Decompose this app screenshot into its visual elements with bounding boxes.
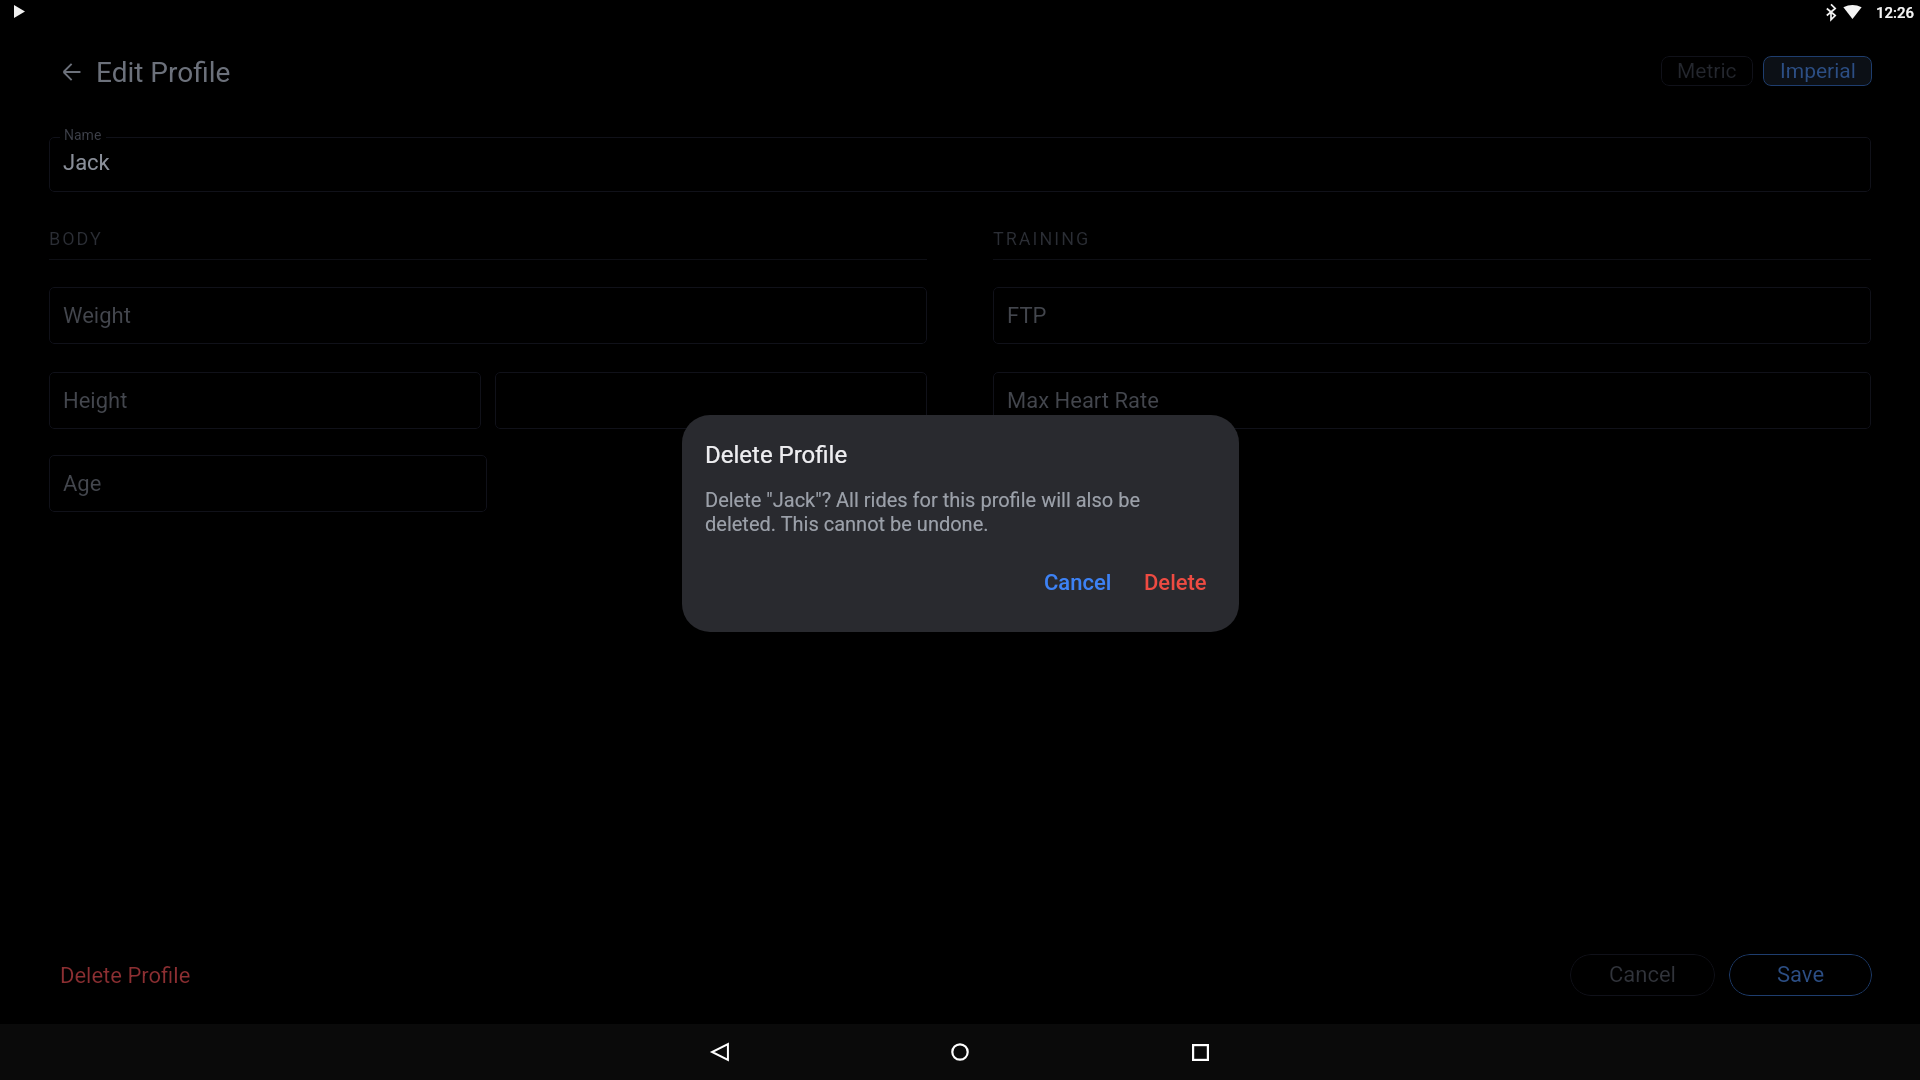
staticText: Height bbox=[63, 388, 128, 414]
staticText: Max Heart Rate bbox=[1007, 388, 1159, 414]
button[interactable]: Home bbox=[951, 1043, 969, 1061]
staticText: Imperial bbox=[1780, 59, 1856, 84]
staticText: Jack bbox=[63, 150, 110, 176]
button[interactable]: Age bbox=[49, 455, 487, 512]
staticText: FTP bbox=[1007, 303, 1047, 329]
button[interactable]: Imperial bbox=[1763, 56, 1872, 86]
staticText: TRAINING bbox=[993, 228, 1091, 249]
staticText: Delete Profile bbox=[705, 441, 848, 469]
button[interactable]: Weight bbox=[49, 287, 927, 344]
button[interactable]: Back bbox=[711, 1043, 729, 1061]
staticText: Cancel bbox=[1609, 962, 1676, 988]
button[interactable]: Back bbox=[54, 54, 90, 90]
button[interactable]: Cancel bbox=[1030, 562, 1126, 604]
button[interactable]: Delete bbox=[1130, 562, 1221, 604]
button[interactable]: Cancel bbox=[1570, 954, 1715, 996]
staticText: 12:26 bbox=[1876, 4, 1915, 22]
button[interactable]: Max Heart Rate bbox=[993, 372, 1871, 429]
staticText: Name bbox=[64, 127, 102, 143]
button[interactable]: Save bbox=[1729, 954, 1872, 996]
staticText: Weight bbox=[63, 303, 131, 329]
button[interactable]: FTP bbox=[993, 287, 1871, 344]
button[interactable]: Height inches bbox=[495, 372, 927, 429]
button[interactable]: Height bbox=[49, 372, 481, 429]
staticText: Age bbox=[63, 471, 102, 497]
staticText: Delete "Jack"? All rides for this profil… bbox=[705, 488, 1148, 536]
staticText: Save bbox=[1777, 962, 1825, 988]
staticText: Edit Profile bbox=[96, 56, 231, 89]
staticText: Delete Profile bbox=[60, 963, 191, 989]
button[interactable]: Jack bbox=[49, 137, 1871, 192]
button[interactable]: Recents bbox=[1192, 1044, 1209, 1061]
button[interactable]: Delete Profile bbox=[52, 958, 199, 994]
staticText: BODY bbox=[49, 228, 103, 249]
button[interactable]: Metric bbox=[1661, 56, 1753, 86]
staticText: Metric bbox=[1677, 59, 1737, 84]
